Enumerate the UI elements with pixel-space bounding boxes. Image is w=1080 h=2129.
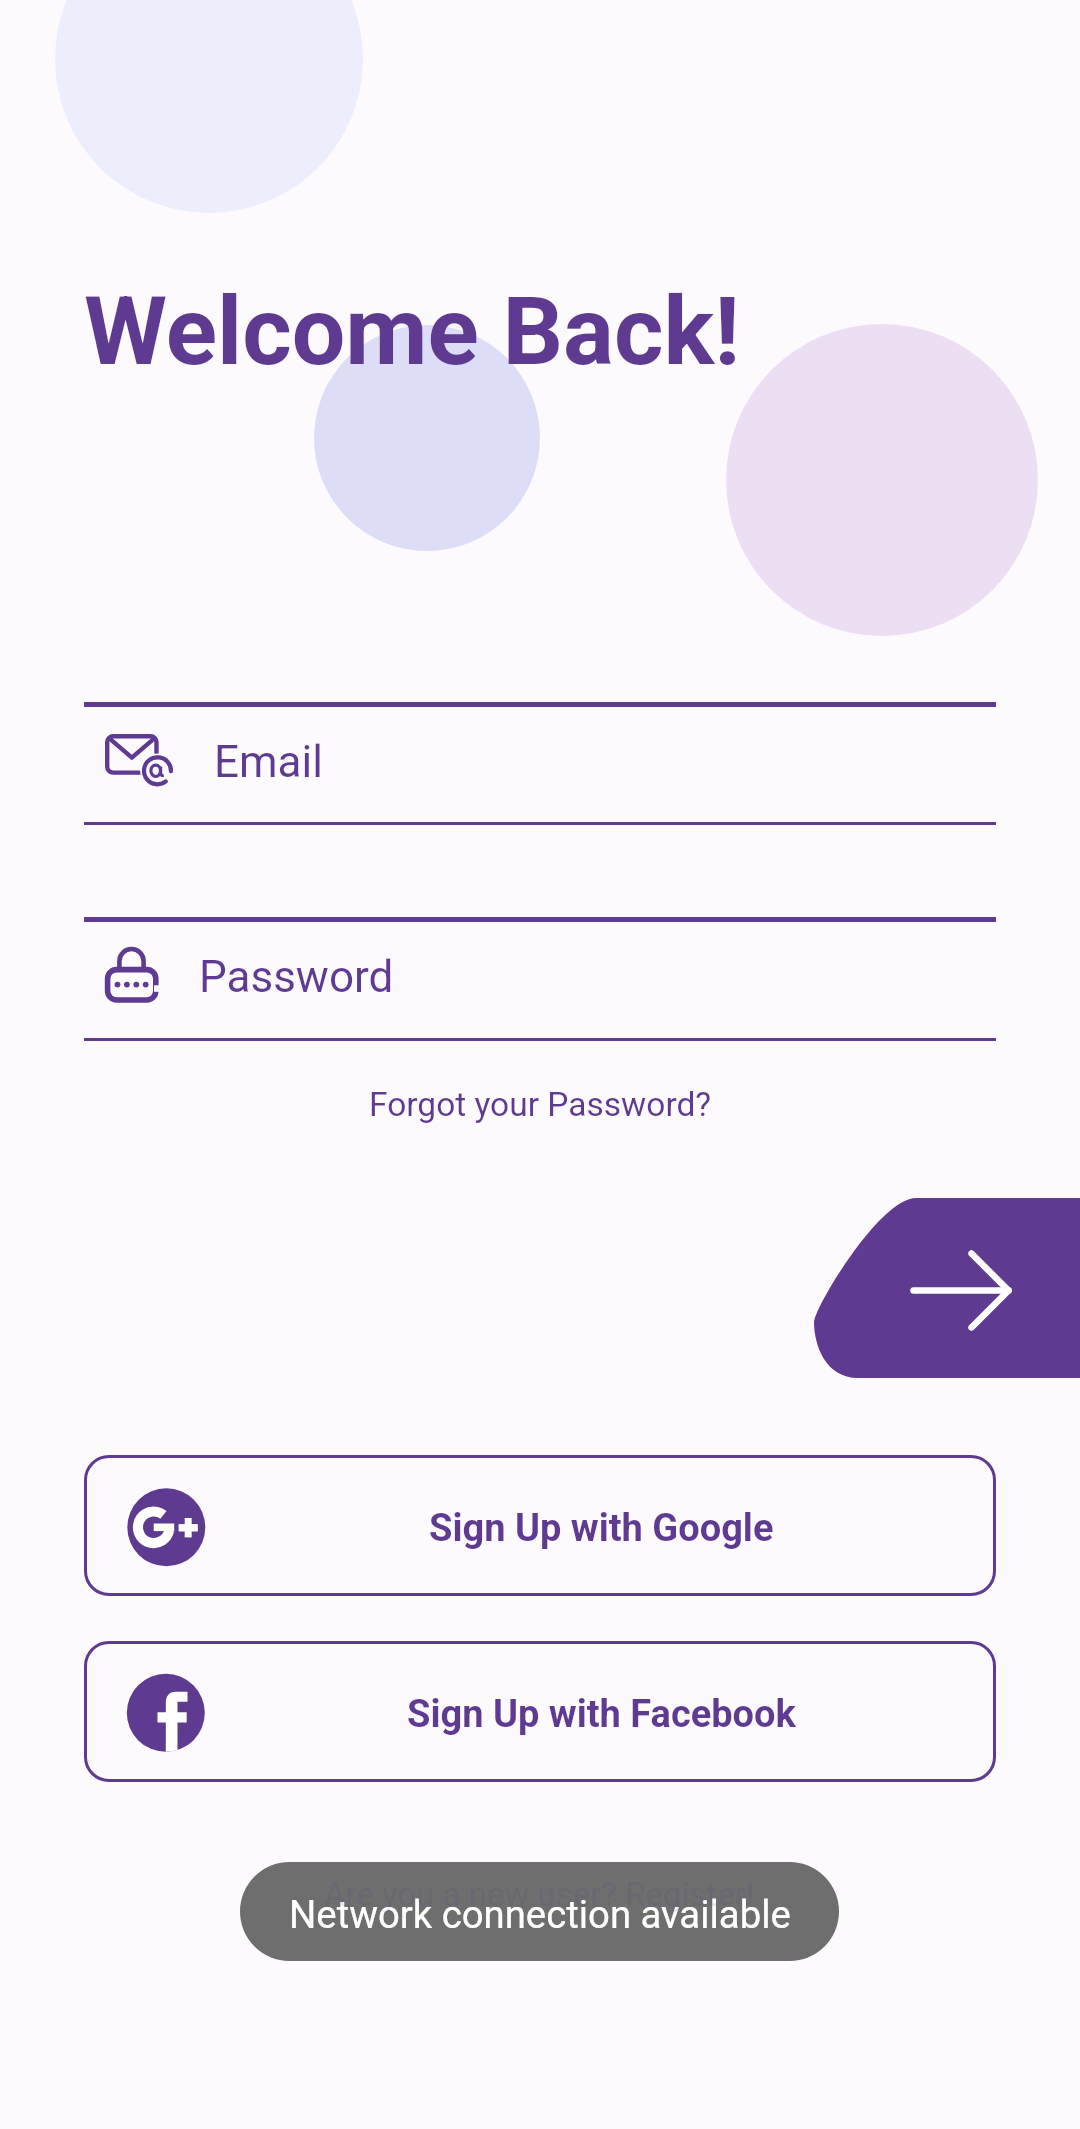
button[interactable]: Sign Up with Google (84, 1455, 996, 1596)
button[interactable]: Password (84, 922, 996, 1038)
button[interactable]: Email (84, 707, 996, 822)
staticText: Forgot your Password? (369, 1085, 712, 1124)
staticText: Sign Up with Google (429, 1506, 774, 1551)
staticText: Are you a new user? Register! (324, 1875, 755, 1914)
button[interactable]: Forgot your Password? (360, 1078, 720, 1130)
staticText: Email (214, 736, 323, 788)
staticText: Are you a new user? Register! (324, 1875, 755, 1914)
button[interactable]: Are you a new user? Register! (318, 1870, 762, 1920)
staticText: Password (199, 951, 394, 1003)
button[interactable]: Sign in (814, 1198, 1080, 1378)
staticText: Network connection available (289, 1892, 791, 1937)
staticText: Sign Up with Facebook (407, 1692, 796, 1737)
button[interactable]: Sign Up with Facebook (84, 1641, 996, 1782)
staticText: Welcome Back! (84, 276, 740, 387)
